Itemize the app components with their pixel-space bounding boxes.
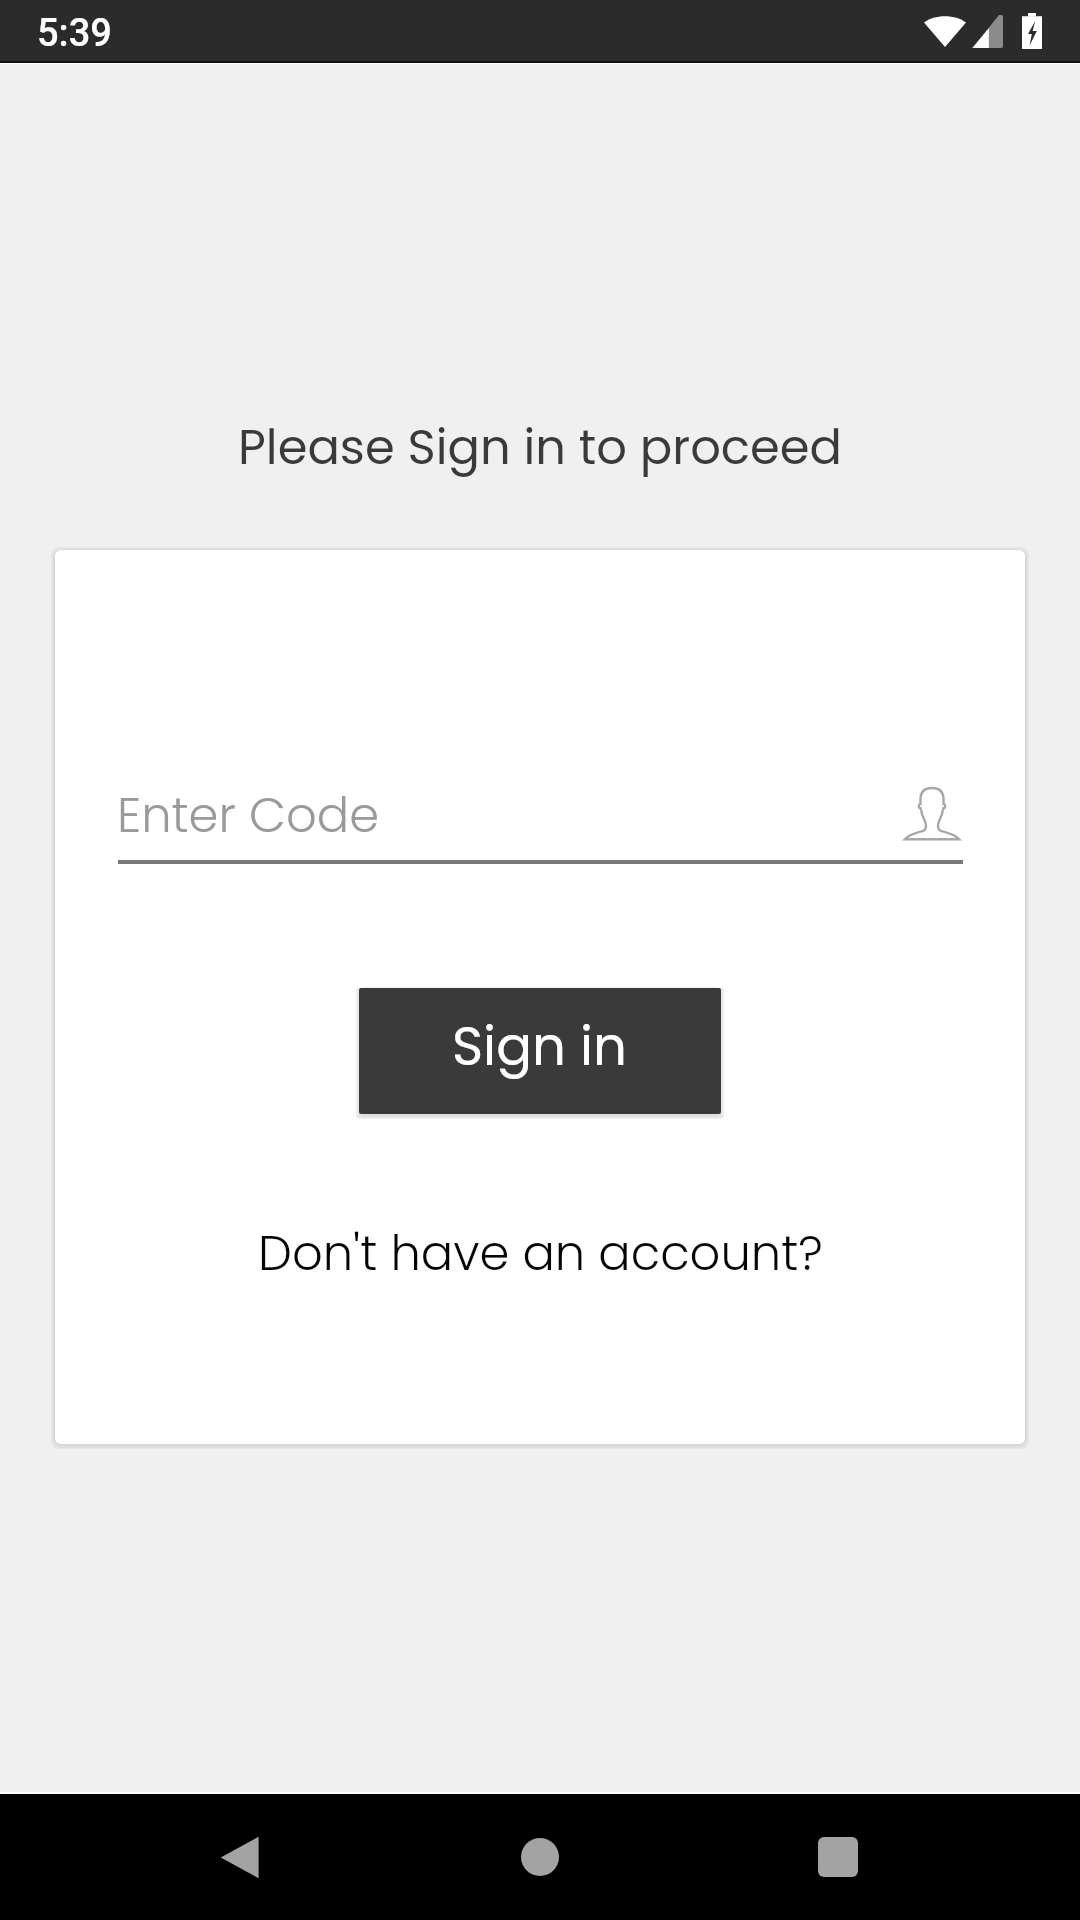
button[interactable]: Don't have an account? [55,1213,1025,1293]
other: Account [904,785,960,840]
button[interactable]: Home [484,1801,596,1913]
button[interactable]: Enter Code [118,764,963,864]
staticText: Enter Code [117,782,380,849]
staticText: Sign in [452,1009,628,1083]
staticText: 5:39 [37,11,112,56]
staticText: Please Sign in to proceed [0,414,1080,481]
button[interactable]: Sign in [359,988,721,1114]
staticText: Don't have an account? [258,1220,823,1287]
button[interactable]: Recents [782,1801,894,1913]
button[interactable]: Back [183,1801,295,1913]
